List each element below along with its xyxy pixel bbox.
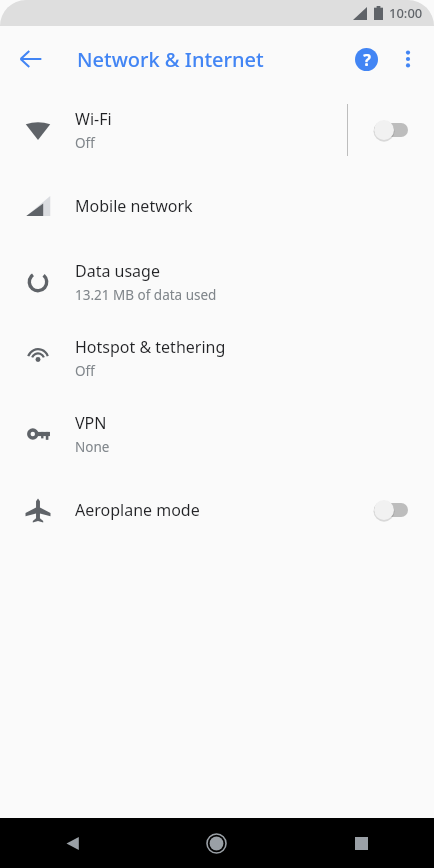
staticText: Off: [75, 134, 95, 152]
staticText: Mobile network: [75, 195, 193, 217]
staticText: Network & Internet: [77, 46, 264, 73]
staticText: 13.21 MB of data used: [75, 286, 217, 304]
button[interactable]: Recents: [289, 818, 434, 868]
button[interactable]: Home: [144, 818, 289, 868]
button[interactable]: Wi-Fi toggle: [348, 92, 434, 168]
staticText: VPN: [75, 412, 107, 434]
button[interactable]: VPN: [0, 396, 434, 472]
button[interactable]: Wi-Fi: [0, 92, 434, 168]
button[interactable]: Mobile network: [0, 168, 434, 244]
button[interactable]: Aeroplane mode: [0, 472, 434, 548]
button[interactable]: Hotspot & tethering: [0, 320, 434, 396]
staticText: Data usage: [75, 260, 160, 282]
staticText: Off: [75, 362, 95, 380]
staticText: Hotspot & tethering: [75, 336, 226, 358]
button[interactable]: More options: [388, 39, 428, 79]
staticText: Aeroplane mode: [75, 499, 200, 521]
button[interactable]: Help: [344, 37, 388, 81]
staticText: Wi-Fi: [75, 108, 112, 130]
staticText: None: [75, 438, 110, 456]
staticText: 10:00: [389, 4, 423, 22]
button[interactable]: Back: [0, 818, 144, 868]
button[interactable]: Back: [10, 38, 52, 80]
staticText: ?: [363, 49, 371, 71]
button[interactable]: Data usage: [0, 244, 434, 320]
button[interactable]: Aeroplane mode toggle: [347, 472, 434, 548]
